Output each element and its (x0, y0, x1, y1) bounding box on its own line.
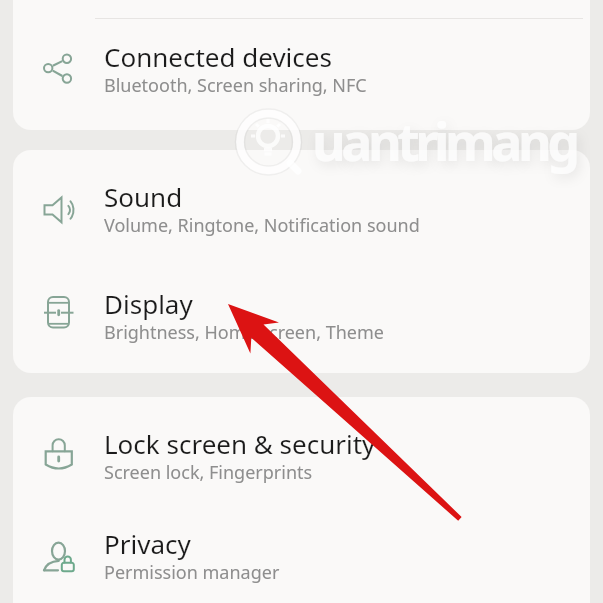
button[interactable] (20, 519, 580, 581)
staticText: Connected devices (104, 39, 332, 74)
staticText: Bluetooth, Screen sharing, NFC (104, 73, 367, 98)
staticText: Sound (104, 179, 183, 214)
button[interactable] (20, 172, 580, 234)
staticText: Volume, Ringtone, Notification sound (104, 213, 420, 238)
button[interactable] (20, 419, 580, 481)
staticText: Brightness, Home screen, Theme (104, 320, 384, 345)
staticText: uantrimang (312, 105, 576, 176)
staticText: Privacy (104, 526, 191, 561)
button[interactable] (20, 32, 580, 94)
staticText: Lock screen & security (104, 426, 376, 461)
staticText: Display (104, 286, 193, 321)
button[interactable] (20, 279, 580, 341)
staticText: Permission manager (104, 560, 280, 585)
staticText: Screen lock, Fingerprints (104, 460, 313, 485)
